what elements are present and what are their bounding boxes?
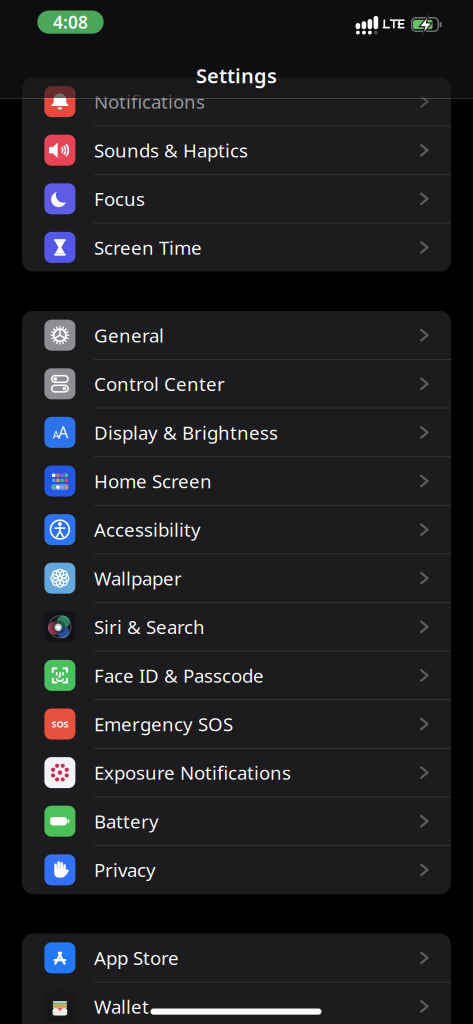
staticText: General [94, 323, 164, 348]
button[interactable]: Accessibility [22, 505, 451, 554]
button[interactable]: 4:08 [37, 10, 104, 34]
button[interactable]: Focus [22, 174, 451, 223]
button[interactable]: Siri & Search [22, 602, 451, 651]
staticText: Display & Brightness [94, 420, 278, 445]
staticText: Focus [94, 186, 145, 211]
staticText: Screen Time [94, 235, 202, 260]
button[interactable]: Battery [22, 797, 451, 845]
staticText: Sounds & Haptics [94, 138, 248, 163]
button[interactable]: Wallet [22, 982, 451, 1024]
button[interactable]: Wallpaper [22, 554, 451, 602]
staticText: SOS [51, 718, 68, 730]
staticText: A [58, 421, 68, 443]
staticText: Accessibility [94, 517, 201, 542]
button[interactable]: Face ID & Passcode [22, 651, 451, 700]
button[interactable]: SOS [22, 700, 451, 748]
staticText: Notifications [94, 89, 205, 114]
button[interactable]: App Store [22, 933, 451, 982]
staticText: Control Center [94, 371, 225, 396]
button[interactable]: A [22, 408, 451, 457]
button[interactable]: Home Screen [22, 457, 451, 505]
staticText: Face ID & Passcode [94, 663, 264, 688]
button[interactable]: Exposure Notifications [22, 748, 451, 797]
button[interactable]: Privacy [22, 845, 451, 894]
staticText: Battery [94, 809, 159, 834]
staticText: A [52, 427, 59, 442]
staticText: Settings [196, 62, 277, 89]
staticText: App Store [94, 945, 179, 970]
staticText: Home Screen [94, 469, 212, 493]
staticText: Siri & Search [94, 614, 205, 639]
button[interactable]: Control Center [22, 359, 451, 408]
staticText: Wallet [94, 994, 149, 1019]
staticText: Wallpaper [94, 566, 182, 591]
staticText: Emergency SOS [94, 712, 233, 736]
staticText: Privacy [94, 857, 156, 882]
staticText: 4:08 [53, 11, 88, 34]
button[interactable]: General [22, 311, 451, 359]
staticText: Exposure Notifications [94, 760, 291, 785]
button[interactable]: Notifications [22, 77, 451, 126]
button[interactable]: Screen Time [22, 223, 451, 272]
button[interactable]: Sounds & Haptics [22, 126, 451, 174]
